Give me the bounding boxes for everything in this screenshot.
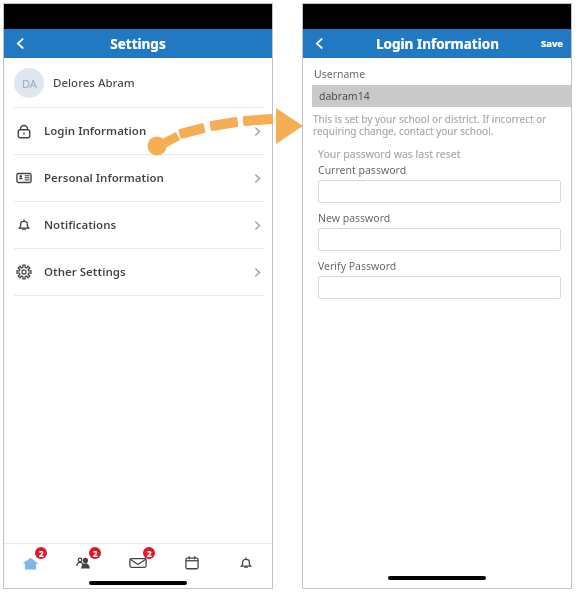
staticText: 2 [93,548,98,559]
staticText: Verify Password [318,259,397,273]
button[interactable]: People [57,544,111,581]
button[interactable]: Home [3,544,57,581]
button[interactable]: Notifications [3,202,273,248]
button[interactable]: Back [3,29,37,58]
button[interactable]: Save [533,29,572,58]
button[interactable]: Alerts [219,544,273,581]
staticText: Current password [318,163,407,177]
button[interactable] [318,228,561,251]
staticText: This is set by your school or district. … [313,112,561,138]
staticText: dabram14 [319,89,370,103]
button[interactable]: Back [302,29,336,58]
button[interactable]: dabram14 [312,85,572,107]
staticText: Delores Abram [53,75,135,91]
staticText: Personal Information [44,170,164,186]
staticText: Notifications [44,217,117,233]
button[interactable]: Other Settings [3,249,273,295]
button[interactable]: DA [3,58,273,107]
staticText: Save [541,37,564,50]
staticText: 2 [147,548,152,559]
staticText: DA [22,76,37,91]
button[interactable]: Login Information [3,108,273,154]
staticText: Username [314,67,366,81]
staticText: Your password was last reset [318,147,461,161]
staticText: Login Information [44,123,147,139]
button[interactable]: Personal Information [3,155,273,201]
button[interactable]: Messages [111,544,165,581]
staticText: Settings [110,35,166,53]
staticText: 2 [39,548,44,559]
button[interactable]: Calendar [165,544,219,581]
staticText: Login Information [376,35,499,53]
staticText: New password [318,211,391,225]
button[interactable] [318,180,561,203]
button[interactable] [318,276,561,299]
staticText: Other Settings [44,264,126,280]
